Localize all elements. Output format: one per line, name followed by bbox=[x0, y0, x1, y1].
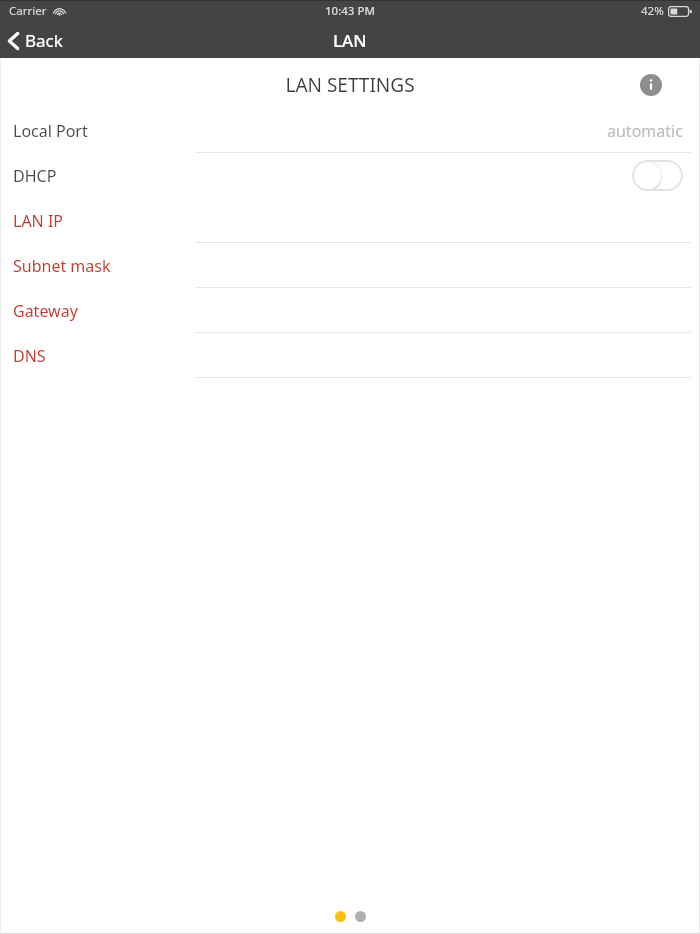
staticText: 42% bbox=[641, 3, 664, 19]
button[interactable]: Info bbox=[640, 74, 662, 96]
staticText: LAN IP bbox=[13, 210, 64, 232]
button[interactable]: Subnet mask bbox=[0, 243, 700, 288]
staticText: automatic bbox=[607, 120, 683, 142]
button[interactable]: Gateway bbox=[0, 288, 700, 333]
staticText: 10:43 PM bbox=[325, 3, 376, 19]
staticText: Carrier bbox=[9, 3, 47, 19]
staticText: Subnet mask bbox=[13, 255, 111, 277]
staticText: LAN bbox=[333, 29, 367, 52]
button[interactable]: DHCP toggle bbox=[632, 160, 683, 191]
button[interactable]: DNS bbox=[0, 333, 700, 378]
button[interactable]: LAN IP bbox=[0, 198, 700, 243]
staticText: Back bbox=[25, 29, 63, 52]
button[interactable]: Page 2 bbox=[355, 911, 366, 922]
staticText: DNS bbox=[13, 345, 46, 367]
button[interactable]: Page 1 bbox=[335, 911, 346, 922]
button[interactable]: Back bbox=[0, 25, 75, 56]
staticText: LAN SETTINGS bbox=[285, 72, 415, 98]
staticText: Gateway bbox=[13, 300, 78, 322]
staticText: DHCP bbox=[13, 165, 57, 187]
staticText: Local Port bbox=[13, 120, 88, 142]
button[interactable]: Local Port bbox=[0, 108, 700, 153]
